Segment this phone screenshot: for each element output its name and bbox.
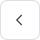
- button[interactable]: Back: [0, 0, 40, 40]
